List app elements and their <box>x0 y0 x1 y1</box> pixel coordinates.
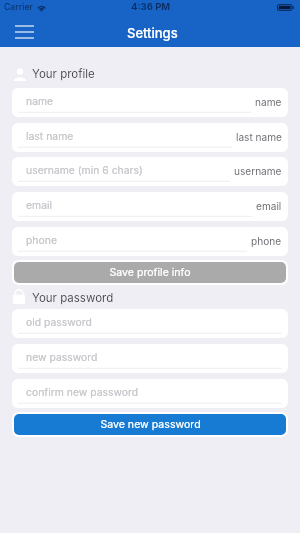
staticText: last name <box>236 131 282 143</box>
staticText: name <box>255 96 282 108</box>
staticText: last name <box>26 130 74 143</box>
staticText: Save profile info <box>109 266 191 279</box>
button[interactable]: email <box>12 192 288 221</box>
staticText: username (min 6 chars) <box>26 164 143 177</box>
staticText: old password <box>26 316 92 329</box>
staticText: new password <box>26 351 98 364</box>
button[interactable]: confirm new password <box>12 379 288 408</box>
button[interactable]: new password <box>12 344 288 373</box>
staticText: phone <box>251 235 282 247</box>
staticText: email <box>256 200 282 212</box>
staticText: confirm new password <box>26 386 139 399</box>
button[interactable]: username (min 6 chars) <box>12 157 288 186</box>
staticText: username <box>234 165 282 177</box>
staticText: Your password <box>32 291 114 305</box>
staticText: Save new password <box>100 418 201 431</box>
button[interactable]: Save new password <box>12 412 288 437</box>
staticText: 4:36 PM <box>131 1 171 12</box>
button[interactable]: last name <box>12 123 288 152</box>
staticText: Your profile <box>32 67 95 81</box>
staticText: Carrier <box>4 2 33 13</box>
button[interactable]: Menu <box>0 20 48 47</box>
button[interactable]: old password <box>12 309 288 338</box>
staticText: Settings <box>127 25 178 41</box>
staticText: phone <box>26 234 57 247</box>
staticText: email <box>26 199 53 212</box>
staticText: name <box>26 95 54 108</box>
button[interactable]: name <box>12 88 288 117</box>
button[interactable]: Save profile info <box>12 260 288 285</box>
button[interactable]: phone <box>12 227 288 256</box>
